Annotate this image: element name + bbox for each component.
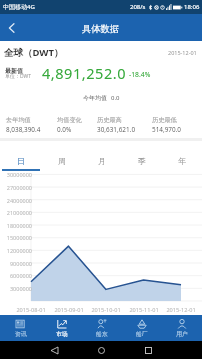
button[interactable]: 船东	[82, 315, 122, 341]
staticText: 4,891,252.0	[42, 63, 127, 83]
button[interactable]: 用户	[162, 315, 202, 341]
staticText: -18.4%	[129, 70, 151, 79]
button[interactable]: 市场	[41, 315, 82, 341]
staticText: 2015-12-01	[164, 306, 198, 314]
staticText: 季	[138, 156, 146, 166]
button[interactable]: 季	[122, 141, 162, 171]
staticText: 去年均值	[6, 116, 31, 124]
staticText: 历史最高	[97, 116, 122, 124]
staticText: 资讯	[15, 330, 27, 337]
staticText: 21000000	[6, 209, 32, 216]
staticText: 9000000	[9, 260, 32, 267]
staticText: 2015-11-01	[127, 306, 161, 314]
button[interactable]: 年	[162, 141, 202, 171]
staticText: 周	[58, 156, 66, 166]
staticText: 全球（DWT）	[4, 46, 64, 59]
staticText: 今年均值	[83, 94, 107, 102]
staticText: 用户	[176, 330, 188, 337]
staticText: 18:06	[184, 3, 200, 11]
button[interactable]: 船厂	[122, 315, 162, 341]
staticText: 30,631,621.0	[97, 125, 136, 134]
staticText: 2015-10-01	[89, 306, 123, 314]
staticText: 2015-09-01	[52, 306, 86, 314]
staticText: 单位：DWT	[5, 73, 32, 80]
staticText: 0.0	[111, 94, 120, 102]
other: Home	[98, 347, 105, 354]
staticText: 均值变化	[57, 116, 82, 124]
staticText: 船厂	[136, 330, 148, 337]
button[interactable]: 周	[41, 141, 82, 171]
staticText: 市场	[56, 330, 68, 337]
staticText: 6000000	[9, 272, 32, 279]
staticText: 年	[178, 156, 186, 166]
staticText: 具体数据	[82, 23, 120, 35]
button[interactable]: 日	[0, 141, 41, 171]
staticText: 日	[17, 156, 25, 166]
staticText: 最新值	[5, 67, 23, 75]
staticText: 12000000	[6, 247, 32, 254]
staticText: 30000000	[6, 171, 32, 178]
staticText: 27000000	[6, 184, 32, 191]
staticText: 0.0%	[57, 125, 72, 134]
staticText: 船东	[96, 330, 108, 337]
button[interactable]: 月	[82, 141, 122, 171]
staticText: 中国移动4G	[3, 3, 35, 11]
staticText: 历史最低	[152, 116, 177, 124]
staticText: 18000000	[6, 222, 32, 229]
staticText: 24000000	[6, 197, 32, 204]
other: Recents	[145, 347, 152, 354]
button[interactable]: Back	[0, 14, 24, 41]
other: Back	[51, 347, 58, 354]
staticText: 514,970.0	[152, 125, 182, 134]
button[interactable]: 资讯	[0, 315, 41, 341]
staticText: 8,038,390.4	[6, 125, 41, 134]
staticText: 月	[98, 156, 106, 166]
staticText: 2015-08-01	[14, 306, 48, 314]
staticText: 15000000	[6, 234, 32, 241]
staticText: 3000000	[9, 285, 32, 292]
staticText: 208/s	[130, 3, 146, 11]
staticText: 2015-12-01	[168, 49, 197, 56]
